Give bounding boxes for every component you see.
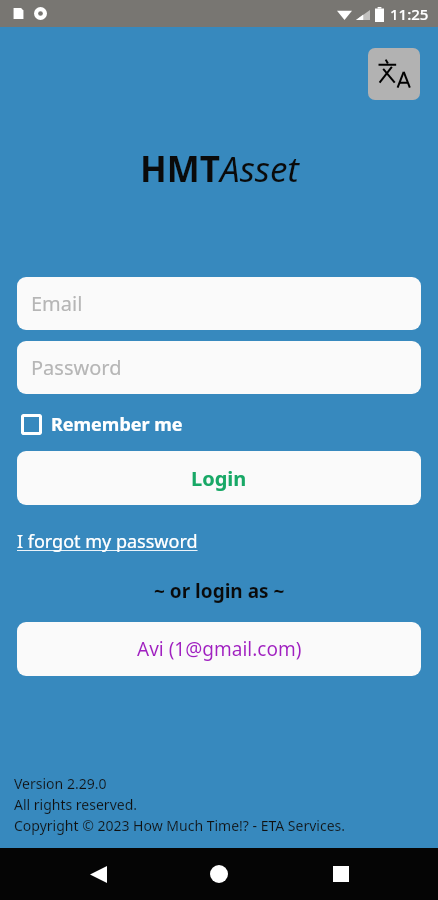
staticText: 11:25 bbox=[390, 4, 429, 24]
button[interactable]: Password bbox=[17, 341, 421, 394]
button[interactable]: Email bbox=[17, 277, 421, 330]
staticText: I forgot my password bbox=[17, 529, 198, 554]
staticText: Password bbox=[31, 354, 122, 381]
staticText: Version 2.29.0 bbox=[14, 774, 107, 793]
button[interactable]: Recent apps bbox=[317, 850, 365, 898]
staticText: Copyright © 2023 How Much Time!? - ETA S… bbox=[14, 816, 346, 835]
staticText: ~ or login as ~ bbox=[154, 578, 285, 604]
button[interactable]: Home bbox=[195, 850, 243, 898]
staticText: HMTAsset bbox=[140, 145, 299, 193]
button[interactable]: I forgot my password bbox=[17, 527, 198, 556]
button[interactable]: Remember me bbox=[17, 408, 187, 441]
button[interactable]: Avi (1@gmail.com) bbox=[17, 622, 421, 676]
staticText: Login bbox=[191, 465, 247, 492]
staticText: All rights reserved. bbox=[14, 795, 138, 814]
staticText: Email bbox=[31, 290, 83, 317]
staticText: Avi (1@gmail.com) bbox=[137, 636, 302, 662]
button[interactable]: Login bbox=[17, 451, 421, 505]
staticText: Remember me bbox=[51, 412, 183, 437]
button[interactable]: Change language bbox=[368, 48, 420, 100]
button[interactable]: Back bbox=[74, 850, 122, 898]
